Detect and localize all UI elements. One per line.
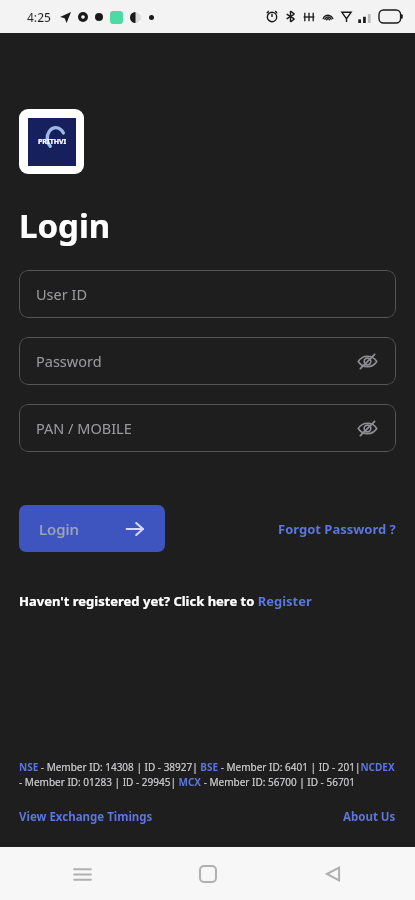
button[interactable]: Home bbox=[186, 852, 230, 896]
staticText: Haven't registered yet? Click here to Re… bbox=[19, 592, 312, 610]
button[interactable]: About Us bbox=[343, 809, 396, 825]
button[interactable]: Toggle password visibility bbox=[354, 415, 380, 441]
staticText: User ID bbox=[36, 284, 87, 304]
staticText: Login bbox=[39, 519, 79, 539]
button[interactable]: Forgot Password ? bbox=[278, 520, 396, 538]
button[interactable]: Login bbox=[19, 505, 165, 552]
button[interactable]: Password bbox=[19, 337, 396, 385]
staticText: NSE - Member ID: 14308 | ID - 38927| BSE… bbox=[19, 760, 396, 789]
staticText: About Us bbox=[343, 809, 396, 825]
staticText: 4:25 bbox=[27, 9, 51, 25]
button[interactable]: View Exchange Timings bbox=[19, 809, 153, 825]
staticText: Login bbox=[19, 203, 111, 248]
staticText: View Exchange Timings bbox=[19, 809, 153, 825]
staticText: Forgot Password ? bbox=[278, 520, 396, 538]
button[interactable]: Back bbox=[311, 852, 355, 896]
staticText: PAN / MOBILE bbox=[36, 418, 132, 438]
button[interactable]: Haven't registered yet? Click here to Re… bbox=[19, 592, 312, 610]
button[interactable]: PAN / MOBILE bbox=[19, 404, 396, 452]
button[interactable]: User ID bbox=[19, 270, 396, 318]
staticText: PRITHVI bbox=[38, 137, 67, 147]
button[interactable]: Recent apps bbox=[60, 852, 104, 896]
staticText: Password bbox=[36, 351, 102, 371]
button[interactable]: Toggle password visibility bbox=[354, 348, 380, 374]
